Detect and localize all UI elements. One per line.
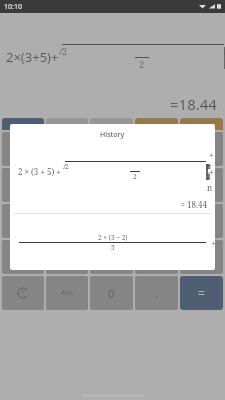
button[interactable]: sin xyxy=(2,132,44,166)
button[interactable]: 1 xyxy=(46,240,88,274)
staticText: 2 xyxy=(139,58,145,70)
button[interactable]: 6 xyxy=(135,204,178,238)
button[interactable]: cos xyxy=(46,132,88,166)
staticText: = 18.44 xyxy=(18,199,207,210)
button[interactable]: 0 xyxy=(90,276,133,310)
button[interactable]: 7 xyxy=(46,168,88,202)
button[interactable] xyxy=(135,118,178,130)
button[interactable]: ^ xyxy=(135,132,178,166)
staticText: 2 × (3 − 2) xyxy=(98,233,128,242)
button[interactable]: Ans xyxy=(46,276,88,310)
button[interactable] xyxy=(2,118,44,130)
staticText: = xyxy=(198,285,205,301)
button[interactable]: ÷ xyxy=(180,132,223,166)
button[interactable]: 2 xyxy=(90,240,133,274)
button[interactable]: − xyxy=(180,204,223,238)
button[interactable]: ln xyxy=(2,204,44,238)
staticText: =18.44 xyxy=(170,94,217,114)
button[interactable]: 5 xyxy=(90,204,133,238)
staticText: 2×(3+5)+ xyxy=(6,48,59,66)
staticText: 5 xyxy=(111,243,115,252)
button[interactable]: 9 xyxy=(135,168,178,202)
button[interactable]: e xyxy=(2,240,44,274)
button[interactable]: 4 xyxy=(46,204,88,238)
button[interactable]: log xyxy=(2,168,44,202)
button[interactable] xyxy=(46,118,88,130)
button[interactable]: tan xyxy=(90,132,133,166)
staticText: 2 xyxy=(65,162,69,171)
staticText: 2 xyxy=(62,45,68,57)
button[interactable]: = xyxy=(180,276,223,310)
button[interactable]: 2 × (3 − 2) xyxy=(10,214,215,270)
staticText: 10:10 xyxy=(4,2,22,12)
button[interactable]: × xyxy=(180,168,223,202)
staticText: . xyxy=(155,286,158,301)
button[interactable]: 8 xyxy=(90,168,133,202)
button[interactable]: 2 × (3 + 5) + xyxy=(10,146,215,213)
button[interactable] xyxy=(180,118,223,130)
staticText: 2 × (3 + 5) + xyxy=(18,166,63,177)
staticText: 2 xyxy=(133,172,137,181)
button[interactable] xyxy=(90,118,133,130)
staticText: History xyxy=(100,130,125,140)
staticText: Ans xyxy=(61,288,74,298)
button[interactable]: History xyxy=(2,276,44,310)
staticText: 0 xyxy=(108,286,115,301)
button[interactable]: 3 xyxy=(135,240,178,274)
button[interactable]: + xyxy=(180,240,223,274)
